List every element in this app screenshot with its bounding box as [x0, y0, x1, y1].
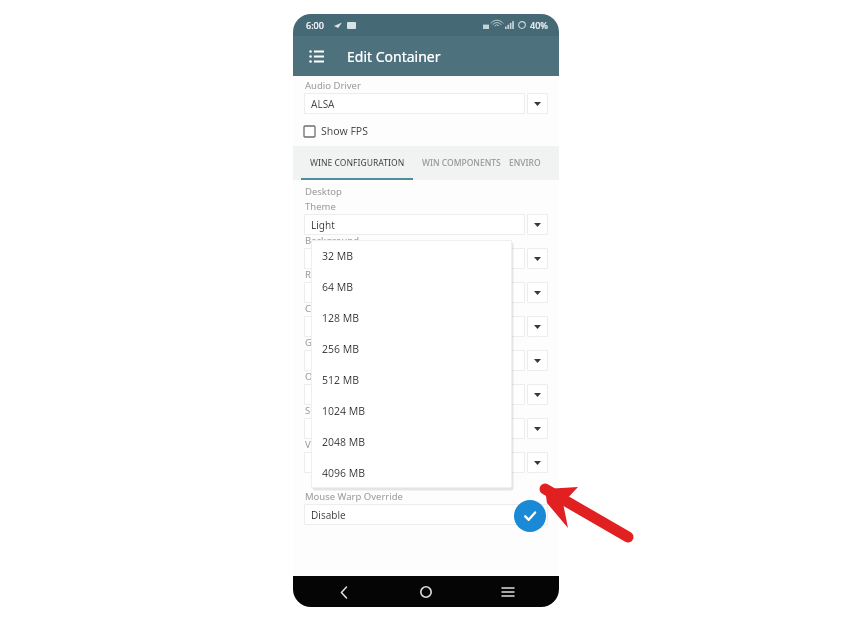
button[interactable]: Disable	[304, 504, 548, 525]
staticText: WIN COMPONENTS	[422, 157, 501, 169]
staticText: Disable	[311, 508, 346, 522]
staticText: Show FPS	[321, 124, 368, 138]
button[interactable]: 2048 MB	[311, 426, 512, 457]
staticText: DXVK	[311, 354, 337, 368]
staticText: Graphics Driver	[305, 336, 375, 349]
staticText: Offscreen Rendering	[305, 370, 398, 383]
button[interactable]: 1024 MB	[311, 395, 512, 426]
staticText: Audio Driver	[305, 79, 361, 92]
button[interactable]: 4096 MB	[311, 457, 512, 488]
staticText: 64 MB	[322, 280, 354, 294]
staticText: 32	[311, 320, 323, 334]
button[interactable]: GLSL	[304, 418, 548, 439]
staticText: 32 MB	[322, 249, 354, 263]
staticText: Light	[311, 218, 335, 232]
button[interactable]: Home	[413, 579, 439, 605]
staticText: Default	[311, 252, 346, 266]
button[interactable]: Save	[514, 500, 546, 532]
button[interactable]: Recent apps	[495, 579, 521, 605]
staticText: Color Depth	[305, 302, 359, 315]
button[interactable]: Open navigation menu	[299, 39, 333, 73]
staticText: Background	[305, 234, 360, 247]
button[interactable]: Default	[304, 248, 548, 269]
staticText: 512 MB	[322, 373, 360, 387]
button[interactable]: ENVIRO	[509, 146, 559, 180]
staticText: ALSA	[311, 97, 335, 111]
button[interactable]: Show FPS	[304, 122, 368, 140]
staticText: FBO	[311, 388, 331, 402]
staticText: 6:00	[306, 19, 324, 31]
button[interactable]: WIN COMPONENTS	[415, 146, 507, 180]
staticText: Mouse Warp Override	[305, 490, 403, 503]
staticText: 40%	[530, 19, 548, 31]
button[interactable]: DXVK	[304, 350, 548, 371]
button[interactable]: 256 MB	[311, 333, 512, 364]
staticText: Resolution	[305, 268, 353, 281]
staticText: 4096 MB	[322, 466, 366, 480]
staticText: GLSL	[311, 422, 335, 436]
button[interactable]: 4096 MB	[304, 452, 548, 473]
button[interactable]: 32 MB	[311, 240, 512, 271]
button[interactable]: 128 MB	[311, 302, 512, 333]
staticText: Edit Container	[347, 47, 441, 66]
staticText: 128 MB	[322, 311, 360, 325]
staticText: Desktop	[305, 185, 342, 198]
staticText: Video Memory Size	[305, 438, 390, 451]
button[interactable]: WINE CONFIGURATION	[301, 146, 413, 180]
button[interactable]: Back	[331, 579, 357, 605]
button[interactable]: 512 MB	[311, 364, 512, 395]
button[interactable]: Light	[304, 214, 548, 235]
button[interactable]: 32	[304, 316, 548, 337]
staticText: Theme	[305, 200, 336, 213]
staticText: WINE CONFIGURATION	[310, 157, 405, 169]
button[interactable]: ALSA	[304, 93, 548, 114]
button[interactable]: 1280x720	[304, 282, 548, 303]
staticText: Shader Backend	[305, 404, 378, 417]
button[interactable]: 64 MB	[311, 271, 512, 302]
staticText: ENVIRO	[509, 157, 541, 169]
button[interactable]: FBO	[304, 384, 548, 405]
staticText: 1024 MB	[322, 404, 366, 418]
staticText: 2048 MB	[322, 435, 366, 449]
staticText: 4096 MB	[311, 456, 353, 470]
staticText: 256 MB	[322, 342, 360, 356]
staticText: 1280x720	[311, 286, 357, 300]
